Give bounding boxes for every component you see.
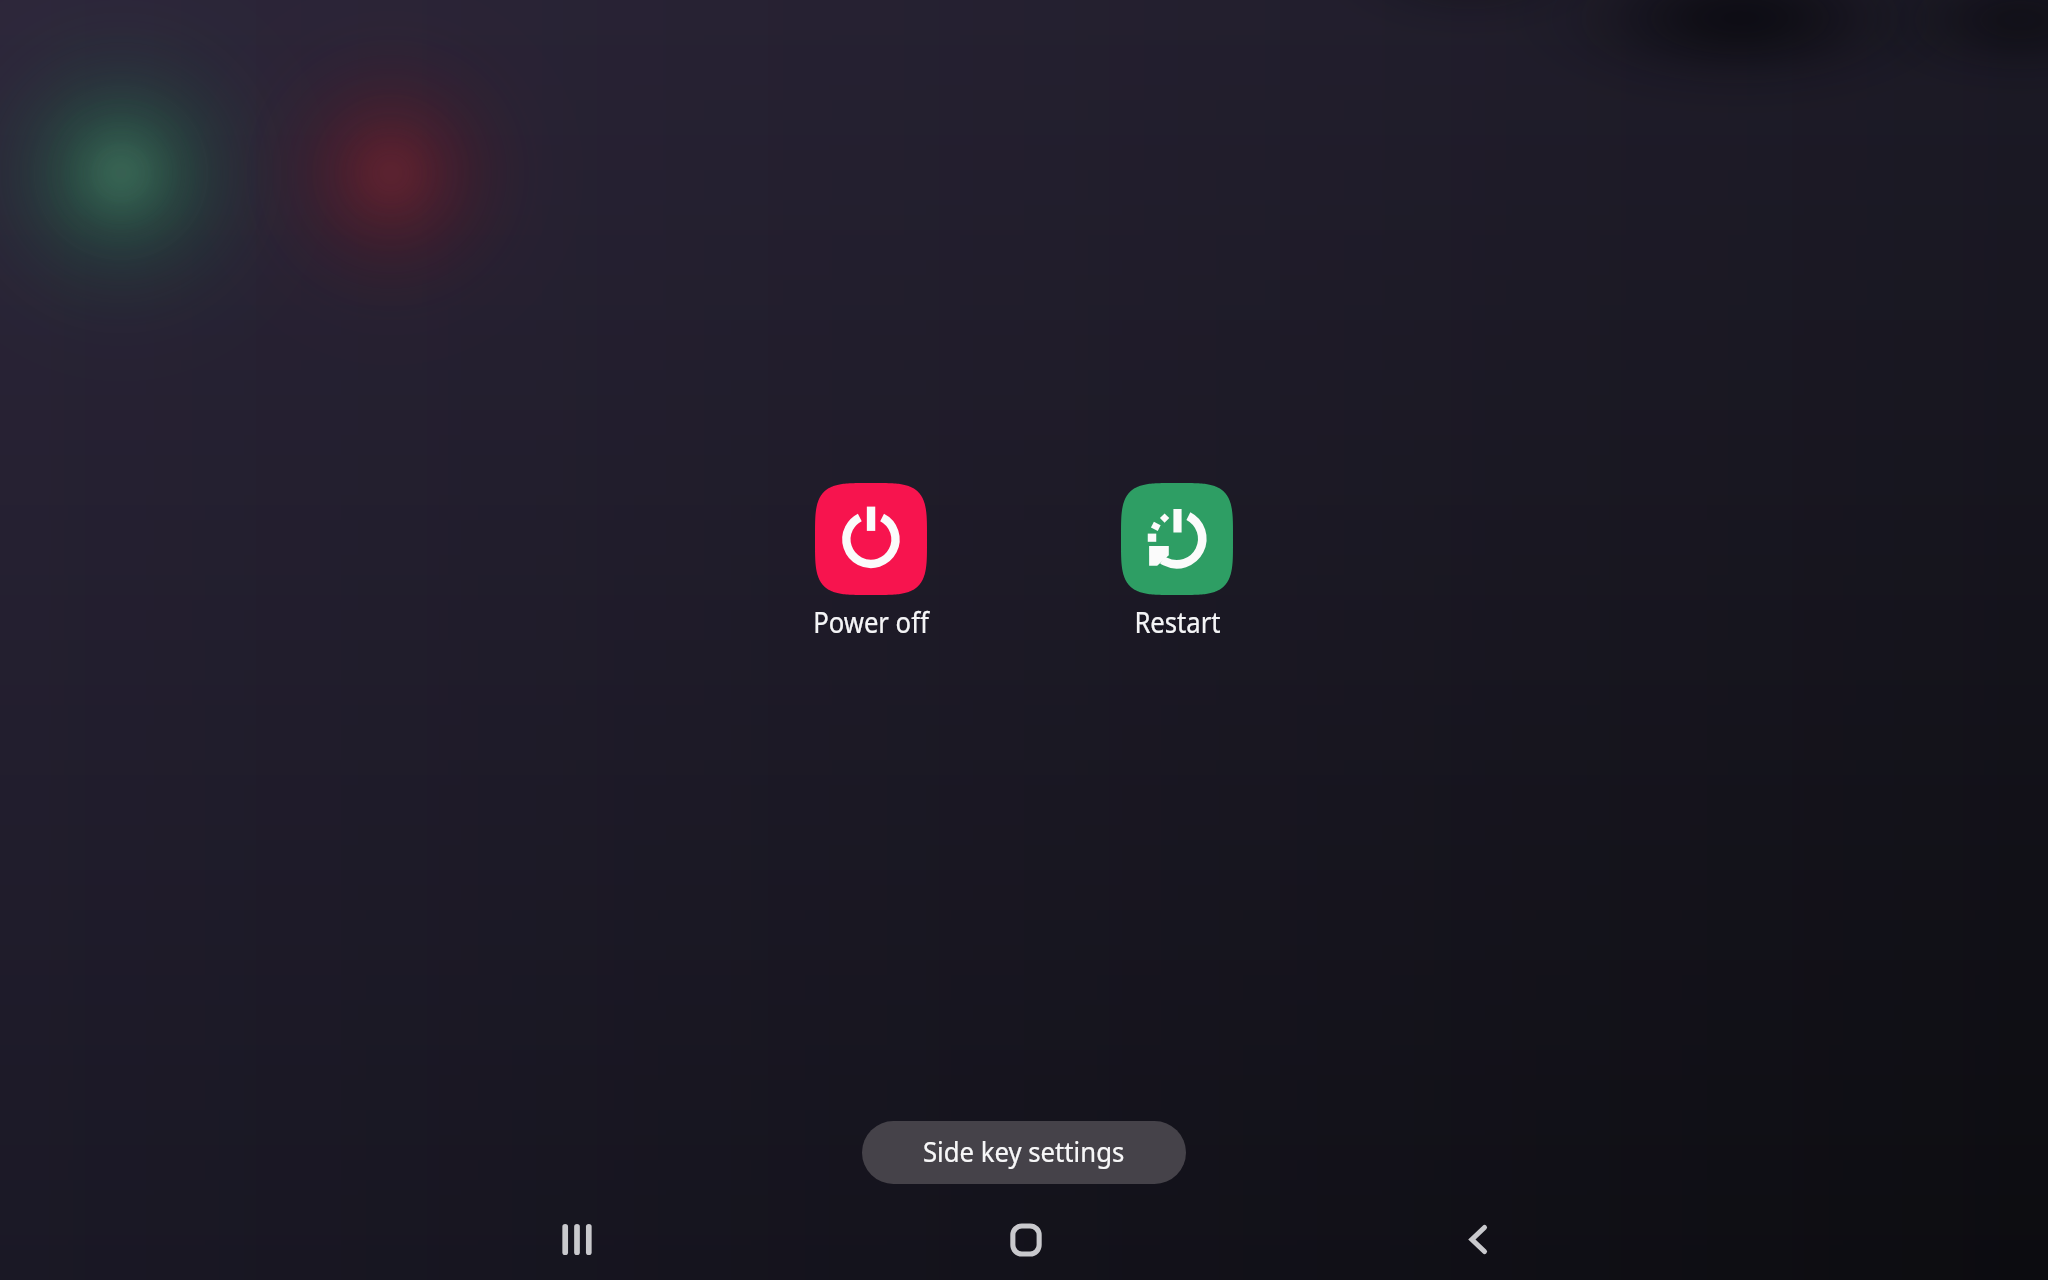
staticText: Side key settings: [923, 1132, 1125, 1169]
button[interactable]: Home: [986, 1200, 1066, 1279]
staticText: Power off: [813, 601, 929, 642]
button[interactable]: Recent apps: [537, 1200, 617, 1279]
button[interactable]: Back: [1435, 1200, 1515, 1279]
staticText: Restart: [1134, 601, 1221, 642]
button[interactable]: Restart: [1097, 471, 1257, 645]
button[interactable]: Power off: [791, 471, 951, 645]
button[interactable]: Side key settings: [862, 1121, 1186, 1184]
